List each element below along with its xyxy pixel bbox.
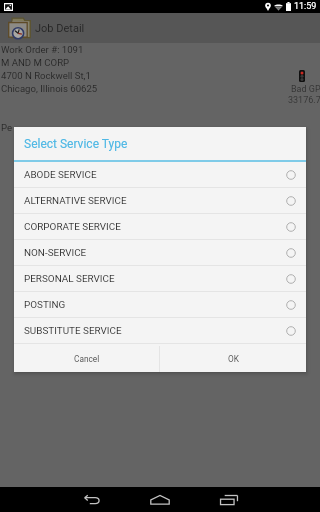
- staticText: PERSONAL SERVICE: [24, 273, 115, 285]
- staticText: 33176.79: [288, 95, 320, 106]
- staticText: Bad GPS: [291, 84, 320, 95]
- button[interactable]: CORPORATE SERVICE: [14, 214, 306, 239]
- button[interactable]: SUBSTITUTE SERVICE: [14, 318, 306, 343]
- button[interactable]: ABODE SERVICE: [14, 162, 306, 187]
- button[interactable]: Home: [134, 487, 186, 512]
- staticText: 4700 N Rockwell St,1: [1, 70, 91, 81]
- staticText: 11:59: [294, 1, 317, 12]
- staticText: OK: [228, 354, 239, 364]
- button[interactable]: NON-SERVICE: [14, 240, 306, 265]
- staticText: Cancel: [74, 354, 100, 364]
- staticText: Chicago, Illinois 60625: [1, 83, 98, 94]
- staticText: M AND M CORP: [1, 57, 70, 68]
- staticText: Pe: [1, 122, 13, 133]
- button[interactable]: Cancel: [14, 346, 159, 372]
- button[interactable]: Back: [65, 487, 117, 512]
- button[interactable]: App icon: [8, 16, 32, 40]
- staticText: Select Service Type: [24, 137, 128, 151]
- button[interactable]: Recent apps: [203, 487, 255, 512]
- button[interactable]: PERSONAL SERVICE: [14, 266, 306, 291]
- staticText: POSTING: [24, 299, 66, 311]
- staticText: SUBSTITUTE SERVICE: [24, 325, 122, 337]
- button[interactable]: POSTING: [14, 292, 306, 317]
- staticText: NON-SERVICE: [24, 247, 87, 259]
- staticText: ABODE SERVICE: [24, 169, 97, 181]
- staticText: Job Detail: [35, 22, 85, 35]
- staticText: Work Order #: 1091: [1, 44, 84, 55]
- staticText: ALTERNATIVE SERVICE: [24, 195, 127, 207]
- button[interactable]: OK: [160, 346, 306, 372]
- staticText: CORPORATE SERVICE: [24, 221, 121, 233]
- button[interactable]: ALTERNATIVE SERVICE: [14, 188, 306, 213]
